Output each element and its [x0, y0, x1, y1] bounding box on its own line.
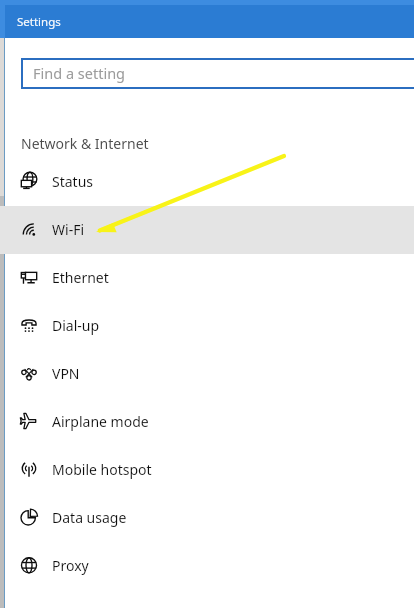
- staticText: Proxy: [52, 556, 89, 575]
- button[interactable]: Airplane mode: [0, 398, 414, 446]
- button[interactable]: VPN: [0, 350, 414, 398]
- staticText: Network & Internet: [21, 134, 149, 153]
- staticText: VPN: [52, 364, 80, 383]
- button[interactable]: Dial-up: [0, 302, 414, 350]
- staticText: Find a setting: [33, 63, 126, 83]
- button[interactable]: Data usage: [0, 494, 414, 542]
- staticText: Status: [52, 172, 94, 191]
- staticText: Mobile hotspot: [52, 460, 152, 479]
- button[interactable]: Mobile hotspot: [0, 446, 414, 494]
- staticText: Dial-up: [52, 316, 100, 335]
- button[interactable]: Status: [0, 158, 414, 206]
- button[interactable]: Proxy: [0, 542, 414, 590]
- staticText: Ethernet: [52, 268, 109, 287]
- staticText: Settings: [17, 14, 61, 30]
- button[interactable]: Find a setting: [21, 58, 414, 89]
- button[interactable]: Ethernet: [0, 254, 414, 302]
- button[interactable]: Wi-Fi: [0, 206, 414, 254]
- staticText: Airplane mode: [52, 412, 149, 431]
- staticText: Wi-Fi: [52, 220, 85, 239]
- staticText: Data usage: [52, 508, 127, 527]
